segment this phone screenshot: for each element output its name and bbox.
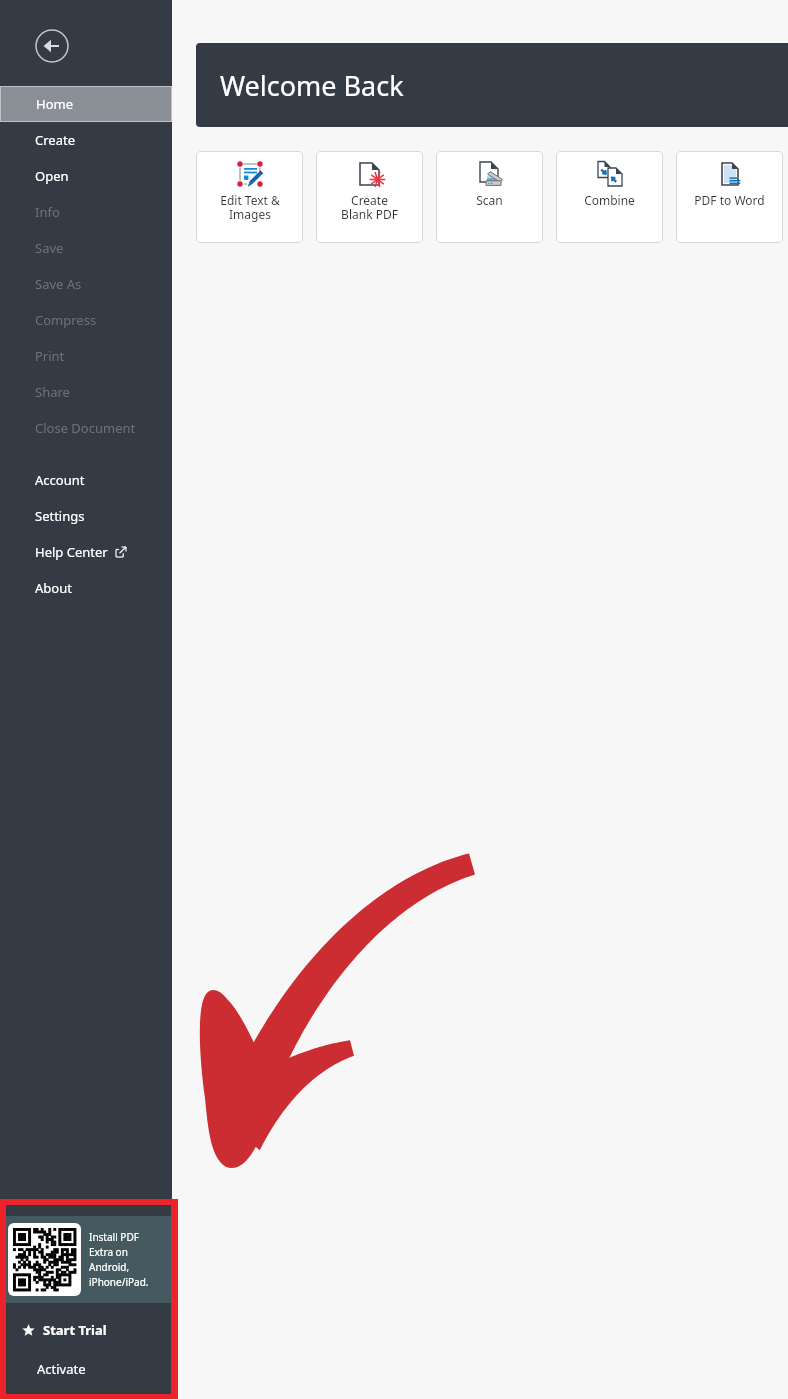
button[interactable]: Edit Text & Images xyxy=(196,151,303,243)
staticText: PDF to Word xyxy=(694,192,765,208)
button[interactable]: Print xyxy=(0,338,172,374)
staticText: Save As xyxy=(35,275,82,293)
button[interactable]: PDF to Word xyxy=(676,151,783,243)
staticText: Welcome Back xyxy=(220,67,404,104)
staticText: Help Center xyxy=(35,543,108,561)
staticText: Create Blank PDF xyxy=(341,192,398,223)
staticText: Account xyxy=(35,471,85,489)
button[interactable]: Help Center xyxy=(0,534,172,570)
button[interactable]: Open xyxy=(0,158,172,194)
staticText: Activate xyxy=(37,1360,86,1378)
staticText: Scan xyxy=(476,192,503,208)
staticText: Combine xyxy=(584,192,635,208)
button[interactable]: Close Document xyxy=(0,410,172,446)
staticText: Home xyxy=(36,95,73,113)
button[interactable]: Home xyxy=(1,87,171,121)
button[interactable]: Combine xyxy=(556,151,663,243)
button[interactable]: Create xyxy=(0,122,172,158)
button[interactable]: Save As xyxy=(0,266,172,302)
button[interactable]: Start Trial xyxy=(6,1303,171,1357)
staticText: Settings xyxy=(35,507,85,525)
button[interactable]: Back xyxy=(34,28,70,64)
button[interactable]: Save xyxy=(0,230,172,266)
staticText: Compress xyxy=(35,311,97,329)
button[interactable]: Scan xyxy=(436,151,543,243)
staticText: Edit Text & Images xyxy=(220,192,280,223)
staticText: Open xyxy=(35,167,69,185)
staticText: Close Document xyxy=(35,419,136,437)
staticText: Save xyxy=(35,239,64,257)
staticText: Share xyxy=(35,383,70,401)
staticText: Install PDF Extra on Android, iPhone/iPa… xyxy=(89,1230,159,1289)
button[interactable]: Create Blank PDF xyxy=(316,151,423,243)
staticText: About xyxy=(35,579,72,597)
button[interactable]: Activate xyxy=(6,1351,171,1387)
staticText: Info xyxy=(35,203,60,221)
staticText: Create xyxy=(35,131,75,149)
button[interactable]: About xyxy=(0,570,172,606)
button[interactable]: Share xyxy=(0,374,172,410)
staticText: Print xyxy=(35,347,65,365)
button[interactable]: Compress xyxy=(0,302,172,338)
button[interactable]: Info xyxy=(0,194,172,230)
button[interactable]: Account xyxy=(0,462,172,498)
button[interactable]: Settings xyxy=(0,498,172,534)
staticText: Start Trial xyxy=(43,1321,107,1339)
